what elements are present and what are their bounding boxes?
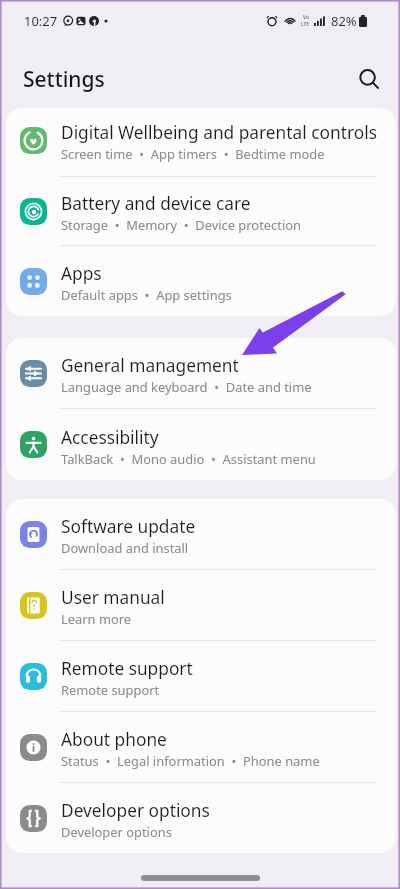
button[interactable]: Apps xyxy=(6,246,396,316)
staticText: Settings xyxy=(23,65,105,94)
button[interactable]: About phone xyxy=(6,712,396,782)
button[interactable]: Search xyxy=(350,60,390,100)
staticText: General management xyxy=(61,354,239,378)
staticText: Default apps • App settings xyxy=(61,286,232,304)
staticText: Accessibility xyxy=(61,426,159,450)
staticText: Download and install xyxy=(61,539,189,557)
button[interactable]: Battery and device care xyxy=(6,177,396,245)
staticText: About phone xyxy=(61,728,167,752)
staticText: Apps xyxy=(61,262,102,286)
staticText: Remote support xyxy=(61,681,160,699)
button[interactable]: User manual xyxy=(6,570,396,640)
button[interactable]: Remote support xyxy=(6,641,396,711)
staticText: Storage • Memory • Device protection xyxy=(61,216,301,234)
staticText: 82% xyxy=(331,12,357,30)
button[interactable]: Software update xyxy=(6,499,396,569)
staticText: Digital Wellbeing and parental controls xyxy=(61,121,377,145)
staticText: TalkBack • Mono audio • Assistant menu xyxy=(61,450,316,468)
staticText: Vo xyxy=(303,14,309,21)
staticText: Software update xyxy=(61,515,196,539)
staticText: Status • Legal information • Phone name xyxy=(61,752,320,770)
button[interactable]: Digital Wellbeing and parental controls xyxy=(6,108,396,176)
staticText: Developer options xyxy=(61,823,172,841)
button[interactable]: General management xyxy=(6,338,396,408)
staticText: 10:27 xyxy=(24,12,58,30)
staticText: User manual xyxy=(61,586,165,610)
staticText: LTE xyxy=(301,21,310,28)
button[interactable]: Accessibility xyxy=(6,409,396,480)
staticText: Battery and device care xyxy=(61,192,251,216)
button[interactable]: Developer options xyxy=(6,783,396,853)
staticText: Developer options xyxy=(61,799,210,823)
staticText: Learn more xyxy=(61,610,132,628)
staticText: Remote support xyxy=(61,657,193,681)
staticText: Language and keyboard • Date and time xyxy=(61,378,312,396)
staticText: Screen time • App timers • Bedtime mode xyxy=(61,145,325,163)
